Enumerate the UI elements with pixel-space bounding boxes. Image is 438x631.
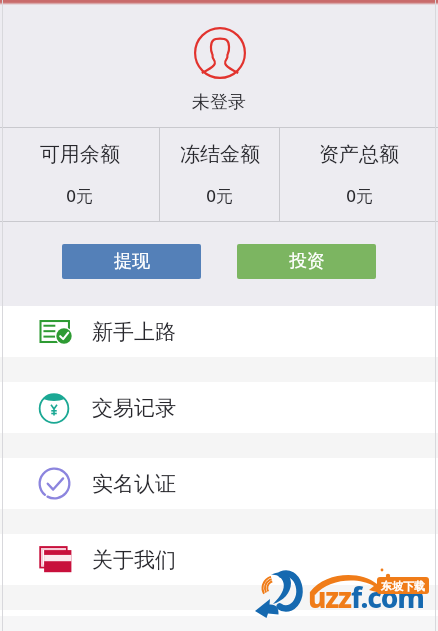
staticText: 提现 — [114, 250, 150, 273]
staticText: 关于我们 — [92, 547, 176, 573]
staticText: uzz — [308, 578, 351, 616]
staticText: 新手上路 — [92, 319, 176, 345]
staticText: 未登录 — [192, 91, 246, 114]
button[interactable]: 交易记录 — [0, 382, 438, 433]
staticText: 实名认证 — [92, 471, 176, 497]
staticText: 冻结金额 — [180, 142, 260, 166]
staticText: 可用余额 — [40, 142, 120, 166]
staticText: 0元 — [66, 184, 93, 206]
staticText: 0元 — [206, 184, 233, 206]
staticText: 资产总额 — [319, 142, 399, 166]
button[interactable]: 提现 — [62, 244, 201, 279]
staticText: f.com — [351, 578, 424, 616]
button[interactable]: 实名认证 — [0, 458, 438, 509]
staticText: 东坡下载 — [381, 579, 425, 593]
button[interactable]: 投资 — [237, 244, 376, 279]
button[interactable]: 新手上路 — [0, 306, 438, 357]
staticText: 0元 — [346, 184, 373, 206]
staticText: 交易记录 — [92, 395, 176, 421]
button[interactable]: 关于我们 — [0, 534, 438, 585]
staticText: 投资 — [289, 250, 325, 273]
